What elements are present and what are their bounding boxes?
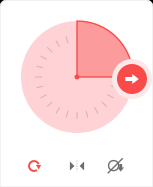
button[interactable]: Step (58, 149, 96, 183)
button[interactable]: Set duration (117, 64, 147, 94)
button[interactable]: Reset (15, 149, 53, 183)
button[interactable]: Mute (97, 149, 135, 183)
